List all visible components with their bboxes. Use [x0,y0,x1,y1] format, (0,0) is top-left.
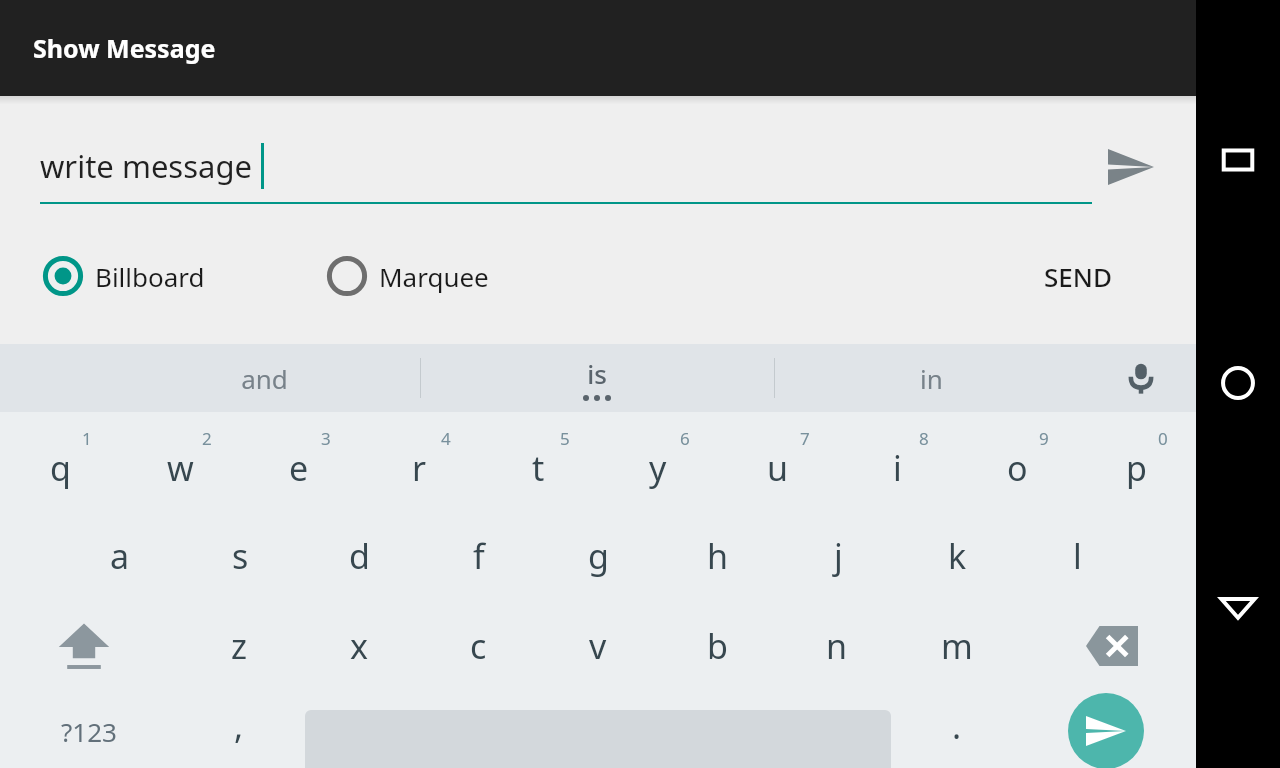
staticText: s [232,533,249,579]
staticText: p [1126,445,1147,491]
staticText: 5 [560,427,570,450]
staticText: o [1007,445,1028,491]
button[interactable]: and [174,344,354,412]
staticText: m [941,623,973,669]
staticText: t [532,445,545,491]
button[interactable]: g [539,513,657,599]
staticText: w [167,445,194,491]
button[interactable]: f [420,513,538,599]
button[interactable]: s [181,513,299,599]
button[interactable]: d [300,513,418,599]
staticText: 8 [919,427,929,450]
staticText: x [350,623,368,669]
staticText: j [834,533,843,579]
staticText: b [707,623,728,669]
button[interactable]: l [1018,513,1136,599]
button[interactable]: n [778,603,896,689]
button[interactable]: o [958,417,1076,503]
staticText: Show Message [33,31,216,65]
staticText: in [920,361,943,396]
staticText: 2 [202,427,212,450]
button[interactable]: in [841,344,1021,412]
button[interactable]: Marquee [325,246,625,306]
button[interactable]: z [180,603,298,689]
staticText: e [289,445,309,491]
staticText: Billboard [95,259,205,294]
staticText: c [470,623,487,669]
button[interactable]: r [360,417,478,503]
button[interactable]: j [779,513,897,599]
button[interactable]: Home [1196,351,1280,415]
staticText: v [589,623,607,669]
button[interactable]: a [61,513,179,599]
button[interactable]: Billboard [0,246,300,306]
staticText: 7 [800,427,810,450]
button[interactable]: is [507,344,687,412]
button[interactable]: ?123 [30,695,148,768]
button[interactable]: x [300,603,418,689]
button[interactable]: p [1077,417,1195,503]
button[interactable]: Shift [25,603,143,689]
button[interactable]: Back [1196,575,1280,639]
staticText: r [412,445,427,491]
staticText: i [893,445,902,491]
button[interactable]: . [898,695,1016,768]
button[interactable]: i [838,417,956,503]
staticText: 3 [321,427,331,450]
staticText: f [473,533,485,579]
staticText: Marquee [379,259,489,294]
staticText: 1 [82,427,92,450]
button[interactable]: b [658,603,776,689]
button[interactable]: e [240,417,358,503]
staticText: and [241,361,288,396]
staticText: 4 [441,427,451,450]
staticText: a [110,533,130,579]
button[interactable]: w [121,417,239,503]
button[interactable]: , [180,695,298,768]
button[interactable]: t [479,417,597,503]
button[interactable]: Send [1100,136,1162,198]
staticText: q [50,445,71,491]
button[interactable]: q [1,417,119,503]
staticText: k [948,533,967,579]
staticText: . [952,703,962,749]
staticText: d [349,533,370,579]
button[interactable]: v [539,603,657,689]
staticText: ?123 [61,714,117,749]
staticText: 0 [1158,427,1168,450]
staticText: SEND [1044,259,1112,294]
staticText: l [1073,533,1082,579]
button[interactable]: k [898,513,1016,599]
staticText: u [767,445,789,491]
button[interactable]: SEND [1026,246,1130,306]
staticText: y [649,445,667,491]
staticText: 6 [680,427,690,450]
staticText: z [231,623,247,669]
button[interactable]: Delete [1053,603,1171,689]
button[interactable]: Voice input [1106,344,1176,412]
button[interactable]: h [659,513,777,599]
button[interactable]: y [599,417,717,503]
staticText: g [588,533,609,579]
staticText: write message [40,145,253,187]
button[interactable]: c [419,603,537,689]
staticText: is [587,356,607,391]
staticText: h [707,533,729,579]
button[interactable]: u [719,417,837,503]
button[interactable]: write message [40,126,1092,206]
button[interactable]: Recents [1196,128,1280,192]
staticText: 9 [1039,427,1049,450]
staticText: n [826,623,848,669]
button[interactable]: Send message [1068,693,1144,768]
staticText: , [234,703,244,749]
button[interactable]: m [898,603,1016,689]
